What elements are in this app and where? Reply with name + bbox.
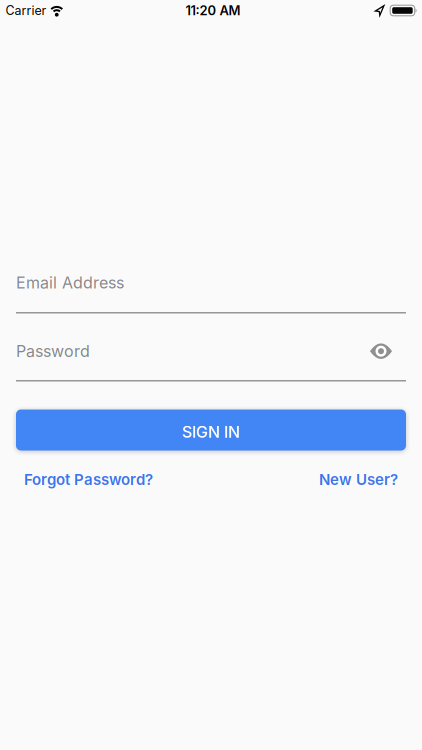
- button[interactable]: Password: [16, 341, 406, 381]
- staticText: SIGN IN: [182, 422, 240, 442]
- button[interactable]: [370, 343, 392, 359]
- staticText: Password: [16, 341, 90, 361]
- staticText: Forgot Password?: [24, 470, 153, 489]
- button[interactable]: New User?: [319, 470, 398, 489]
- button[interactable]: Email Address: [16, 273, 406, 313]
- staticText: 11:20 AM: [185, 3, 240, 18]
- staticText: Carrier: [5, 3, 46, 18]
- button[interactable]: Forgot Password?: [24, 470, 153, 489]
- staticText: New User?: [319, 470, 398, 489]
- button[interactable]: SIGN IN: [16, 409, 406, 450]
- staticText: Email Address: [16, 273, 124, 292]
